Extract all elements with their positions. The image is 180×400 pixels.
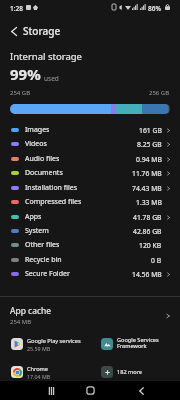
staticText: App cache [10, 305, 52, 317]
staticText: Compressed files [25, 197, 82, 207]
button[interactable]: Chrome [0, 364, 90, 380]
staticText: Secure Folder [25, 269, 70, 279]
button[interactable]: Apps [0, 210, 180, 224]
staticText: 8.25 GB [137, 140, 162, 149]
button[interactable]: Google Play services [0, 336, 90, 352]
staticText: 182 more [117, 368, 143, 376]
staticText: Images [25, 125, 50, 135]
button[interactable]: Google Services Framework [90, 336, 180, 352]
button[interactable]: Audio files [0, 152, 180, 166]
staticText: Internal storage [10, 50, 82, 63]
staticText: 256 GB [149, 89, 170, 97]
staticText: Videos [25, 139, 47, 149]
staticText: 42.86 GB [133, 227, 162, 236]
staticText: 86% [148, 4, 161, 13]
staticText: Documents [25, 168, 63, 178]
staticText: Apps [25, 212, 42, 222]
staticText: 254 GB [10, 89, 31, 97]
staticText: 74.43 MB [132, 184, 162, 193]
button[interactable]: System [0, 224, 180, 238]
staticText: 120 KB [139, 241, 162, 250]
staticText: 0.94 MB [136, 155, 162, 164]
staticText: 25.59 MB [27, 345, 51, 352]
button[interactable]: Compressed files [0, 195, 180, 209]
staticText: Installation files [25, 183, 78, 193]
button[interactable]: Documents [0, 166, 180, 180]
button[interactable]: Home [60, 381, 120, 400]
button[interactable]: 182 more [90, 364, 180, 380]
button[interactable]: App cache [0, 297, 180, 330]
staticText: 41.78 GB [133, 213, 162, 222]
button[interactable]: Installation files [0, 181, 180, 195]
staticText: 254 MB [10, 318, 32, 326]
staticText: 1:28 [10, 4, 23, 13]
button[interactable]: Recents [21, 381, 81, 400]
staticText: 11.76 MB [132, 169, 162, 178]
staticText: Audio files [25, 154, 60, 164]
staticText: 1.33 MB [136, 198, 162, 207]
staticText: used [44, 74, 59, 83]
button[interactable]: Back [111, 381, 171, 400]
staticText: 161 GB [139, 126, 162, 135]
staticText: Google Services Framework [117, 336, 159, 350]
button[interactable]: Secure Folder [0, 267, 180, 281]
staticText: System [25, 226, 49, 236]
button[interactable]: Recycle bin [0, 253, 180, 267]
staticText: 0 B [151, 256, 162, 265]
staticText: 17.04 MB [27, 373, 51, 380]
staticText: Other files [25, 240, 60, 250]
staticText: Chrome [27, 365, 48, 373]
button[interactable]: Back [3, 19, 25, 41]
button[interactable]: Images [0, 123, 180, 137]
staticText: Recycle bin [25, 255, 62, 265]
staticText: 99% [10, 64, 41, 84]
staticText: Storage [23, 24, 61, 38]
staticText: 14.56 MB [132, 270, 162, 279]
staticText: Google Play services [27, 337, 81, 345]
button[interactable]: Videos [0, 137, 180, 151]
button[interactable]: Other files [0, 238, 180, 252]
